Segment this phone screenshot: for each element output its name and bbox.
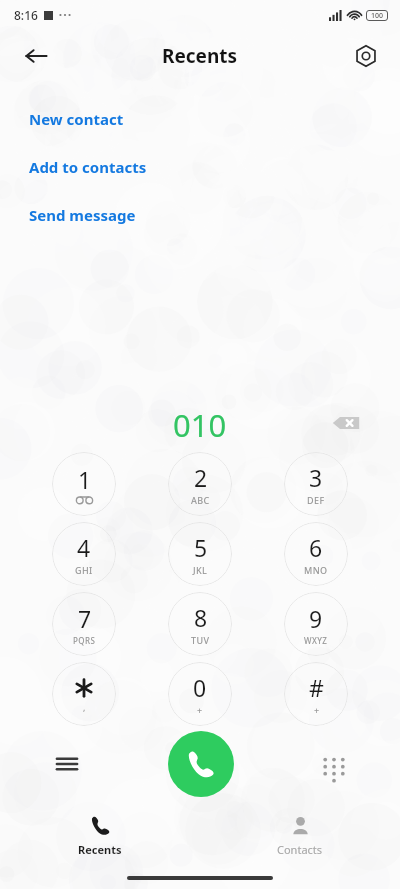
staticText: DEF xyxy=(307,494,325,506)
staticText: MNO xyxy=(304,564,328,576)
button[interactable]: 9 xyxy=(284,592,348,656)
staticText: 010 xyxy=(173,404,227,446)
staticText: ABC xyxy=(191,494,210,506)
button[interactable]: 7 xyxy=(52,592,116,656)
button[interactable]: Settings xyxy=(344,34,388,78)
button[interactable]: 1 xyxy=(52,452,116,516)
staticText: 3 xyxy=(309,462,323,493)
button[interactable]: Back xyxy=(12,32,60,80)
staticText: GHI xyxy=(75,564,93,576)
button[interactable]: 6 xyxy=(284,522,348,586)
button[interactable]: 2 xyxy=(168,452,232,516)
button[interactable]: , xyxy=(52,662,116,726)
staticText: 2 xyxy=(194,462,208,493)
button[interactable]: Add to contacts xyxy=(29,154,147,180)
staticText: JKL xyxy=(193,564,208,576)
button[interactable]: 3 xyxy=(284,452,348,516)
staticText: 8 xyxy=(194,602,208,633)
button[interactable]: Contacts xyxy=(200,805,400,867)
staticText: New contact xyxy=(29,109,124,129)
button[interactable]: 4 xyxy=(52,522,116,586)
staticText: 100 xyxy=(371,11,384,21)
staticText: Add to contacts xyxy=(29,157,147,177)
staticText: + xyxy=(197,704,203,716)
button[interactable]: Recents xyxy=(0,805,200,867)
staticText: 9 xyxy=(309,603,323,634)
staticText: 8:16 xyxy=(14,7,38,23)
staticText: 0 xyxy=(193,672,207,703)
staticText: , xyxy=(83,701,86,713)
staticText: Recents xyxy=(78,842,122,857)
button[interactable]: 0 xyxy=(168,662,232,726)
button[interactable]: Keypad xyxy=(310,740,358,788)
button[interactable]: New contact xyxy=(29,106,124,132)
staticText: PQRS xyxy=(73,635,96,646)
button[interactable]: Menu xyxy=(43,740,91,788)
button[interactable]: Backspace xyxy=(324,401,368,445)
staticText: 5 xyxy=(194,532,208,563)
staticText: 7 xyxy=(78,603,92,634)
button[interactable]: Call xyxy=(168,731,234,797)
staticText: 4 xyxy=(77,532,91,563)
staticText: 6 xyxy=(309,532,323,563)
staticText: Contacts xyxy=(277,842,323,857)
staticText: TUV xyxy=(191,634,210,646)
button[interactable]: Send message xyxy=(29,202,136,228)
button[interactable]: 8 xyxy=(168,592,232,656)
button[interactable]: 5 xyxy=(168,522,232,586)
staticText: Send message xyxy=(29,205,136,225)
staticText: Recents xyxy=(162,43,238,69)
staticText: # xyxy=(309,672,324,703)
staticText: + xyxy=(314,704,320,716)
button[interactable]: # xyxy=(284,662,348,726)
staticText: 1 xyxy=(78,464,92,495)
staticText: WXYZ xyxy=(304,635,328,646)
